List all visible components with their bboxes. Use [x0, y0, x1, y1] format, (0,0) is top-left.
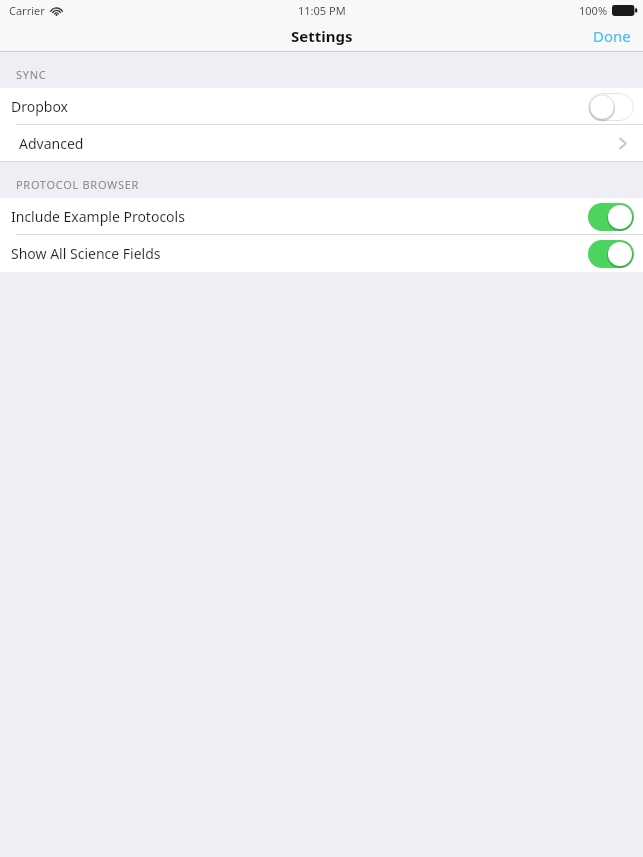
staticText: Show All Science Fields: [11, 244, 161, 263]
button[interactable]: Done: [581, 21, 643, 51]
staticText: SYNC: [16, 67, 47, 82]
button[interactable]: Show All Science Fields: [0, 235, 643, 272]
staticText: Include Example Protocols: [11, 207, 185, 226]
staticText: Dropbox: [11, 97, 69, 116]
staticText: 100%: [579, 3, 608, 18]
staticText: Carrier: [9, 3, 45, 18]
button[interactable]: Switch off: [588, 93, 634, 121]
button[interactable]: Switch on: [588, 240, 634, 268]
staticText: Advanced: [19, 134, 84, 153]
staticText: 11:05 PM: [298, 3, 346, 18]
button[interactable]: Advanced: [0, 125, 643, 162]
button[interactable]: Switch on: [588, 203, 634, 231]
button[interactable]: Dropbox: [0, 88, 643, 125]
staticText: Done: [593, 26, 631, 46]
button[interactable]: Include Example Protocols: [0, 198, 643, 235]
staticText: PROTOCOL BROWSER: [16, 177, 140, 192]
staticText: Settings: [291, 26, 353, 46]
